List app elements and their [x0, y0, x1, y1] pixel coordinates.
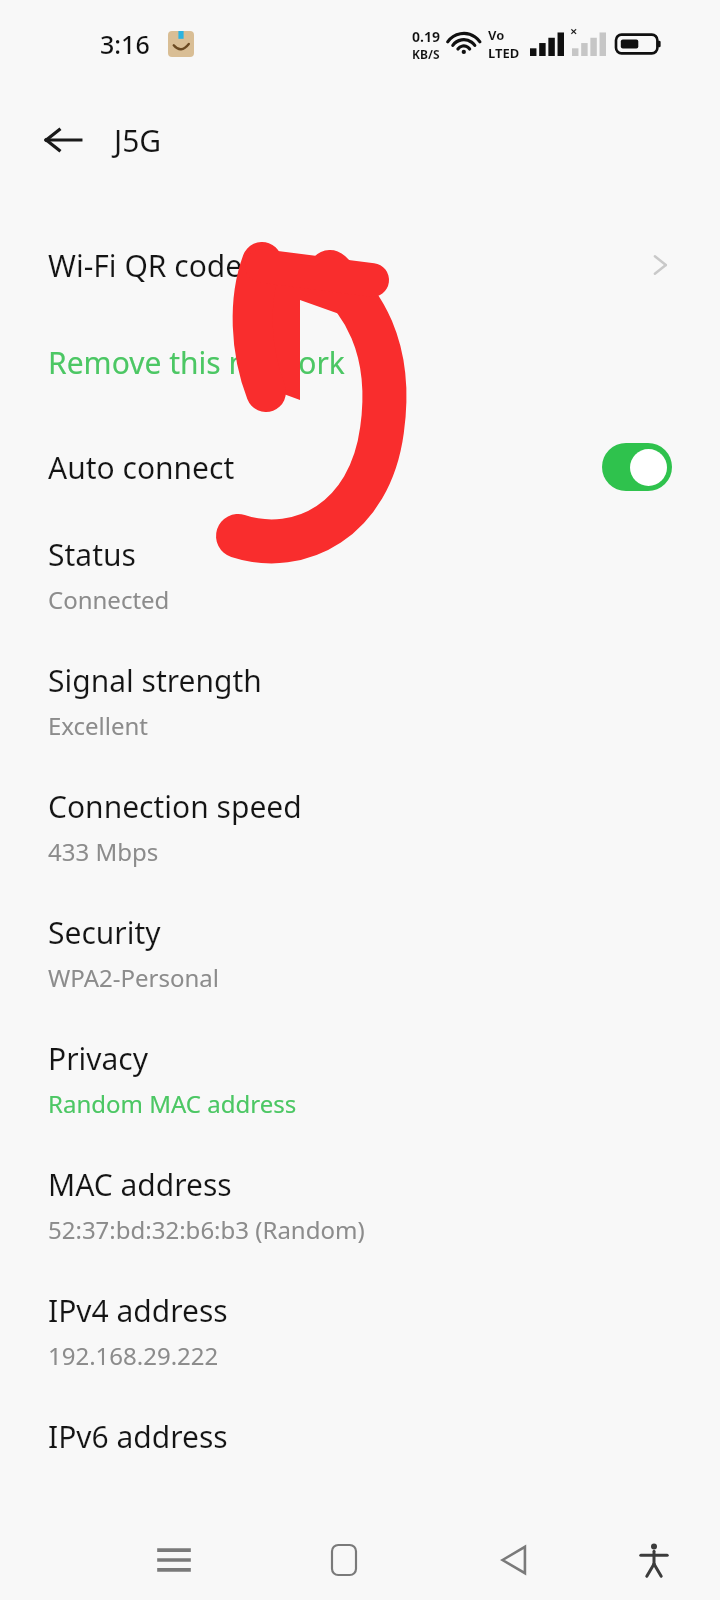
button[interactable]: Wi-Fi QR code: [0, 234, 720, 296]
staticText: Remove this network: [48, 342, 345, 383]
staticText: Security: [48, 912, 161, 953]
staticText: Wi-Fi QR code: [48, 245, 243, 286]
staticText: Connection speed: [48, 786, 302, 827]
staticText: IPv4 address: [48, 1290, 228, 1331]
staticText: Privacy: [48, 1038, 149, 1079]
staticText: 192.168.29.222: [48, 1339, 219, 1372]
button[interactable]: Connection speed: [0, 786, 720, 912]
staticText: KB/S: [412, 46, 440, 62]
staticText: 0.19: [412, 27, 440, 46]
button[interactable]: IPv4 address: [0, 1290, 720, 1416]
staticText: Connected: [48, 583, 170, 616]
staticText: 433 Mbps: [48, 835, 159, 868]
button[interactable]: Home: [300, 1520, 388, 1600]
button[interactable]: Accessibility: [610, 1520, 698, 1600]
staticText: J5G: [114, 120, 162, 161]
button[interactable]: Status: [0, 534, 720, 660]
button[interactable]: Recent apps: [130, 1520, 218, 1600]
button[interactable]: IPv6 address: [0, 1416, 720, 1501]
staticText: ×: [570, 22, 578, 40]
staticText: WPA2-Personal: [48, 961, 219, 994]
staticText: Excellent: [48, 709, 149, 742]
button[interactable]: Signal strength: [0, 660, 720, 786]
button[interactable]: Security: [0, 912, 720, 1038]
button[interactable]: Back: [30, 107, 96, 173]
staticText: Random MAC address: [48, 1087, 297, 1120]
staticText: IPv6 address: [48, 1416, 228, 1457]
button[interactable]: Remove this network: [0, 334, 720, 390]
staticText: 3:16: [100, 27, 150, 61]
button[interactable]: Privacy: [0, 1038, 720, 1164]
staticText: Auto connect: [48, 447, 235, 488]
staticText: Signal strength: [48, 660, 262, 701]
staticText: Vo: [488, 26, 505, 44]
button[interactable]: Auto connect: [0, 436, 720, 498]
staticText: 52:37:bd:32:b6:b3 (Random): [48, 1213, 365, 1246]
button[interactable]: Back: [470, 1520, 558, 1600]
button[interactable]: MAC address: [0, 1164, 720, 1290]
staticText: LTED: [488, 44, 520, 62]
staticText: Status: [48, 534, 136, 575]
staticText: MAC address: [48, 1164, 232, 1205]
